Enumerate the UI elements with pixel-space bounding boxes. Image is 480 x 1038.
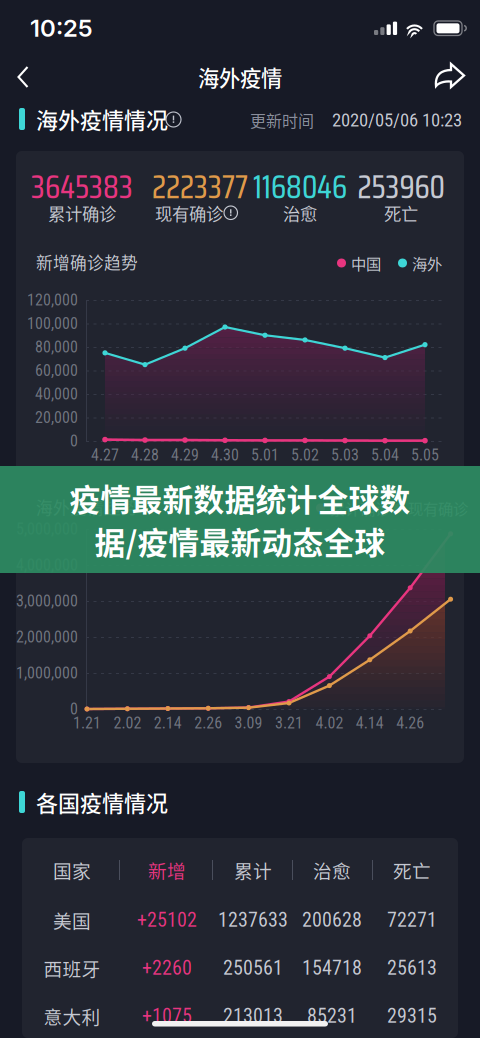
staticText: +2260 (142, 956, 192, 980)
staticText: 85231 (307, 1004, 357, 1028)
staticText: 2020/05/06 10:23 (332, 109, 462, 131)
staticText: 4.14 (356, 714, 384, 732)
staticText: 72271 (387, 908, 437, 932)
staticText: 现有确诊 (408, 497, 468, 519)
staticText: 据/疫情最新动态全球 (94, 519, 385, 563)
staticText: +1075 (142, 1004, 192, 1028)
staticText: 海外 (412, 252, 442, 274)
staticText: 死亡 (393, 856, 431, 883)
staticText: 253960 (357, 162, 444, 212)
staticText: 4.26 (396, 714, 424, 732)
staticText: 0 (70, 432, 78, 450)
staticText: 200628 (302, 908, 362, 932)
staticText: 意大利 (43, 1002, 100, 1029)
staticText: 25613 (387, 956, 437, 980)
staticText: 2.26 (194, 714, 222, 732)
staticText: 29315 (387, 1004, 437, 1028)
button[interactable]: 美国 (22, 896, 458, 944)
staticText: 250561 (223, 956, 283, 980)
button[interactable]: 西班牙 (22, 944, 458, 992)
staticText: 1168046 (253, 162, 347, 212)
button[interactable]: 意大利 (22, 992, 458, 1038)
staticText: 中国 (351, 252, 381, 274)
staticText: 1,000,000 (16, 664, 78, 682)
staticText: 5.03 (331, 446, 359, 464)
staticText: 154718 (302, 956, 362, 980)
staticText: 213013 (223, 1004, 283, 1028)
staticText: 5.02 (291, 446, 319, 464)
staticText: 4.29 (171, 446, 199, 464)
staticText: 国家 (53, 856, 91, 883)
staticText: 4.02 (315, 714, 343, 732)
staticText: 疫情最新数据统计全球数 (69, 476, 410, 520)
staticText: 西班牙 (43, 954, 100, 981)
button[interactable]: 返回 (0, 54, 52, 100)
staticText: 5.05 (411, 446, 439, 464)
staticText: 现有确诊 (155, 200, 223, 226)
staticText: 累计 (234, 856, 272, 883)
staticText: 3,000,000 (16, 592, 78, 610)
staticText: 4.28 (131, 446, 159, 464)
staticText: 60,000 (35, 361, 78, 380)
staticText: 2223377 (152, 162, 248, 212)
staticText: 100,000 (27, 314, 78, 333)
staticText: 3.21 (275, 714, 303, 732)
staticText: 治愈 (283, 200, 317, 226)
staticText: 累计确诊 (330, 497, 390, 519)
staticText: 海外疫情趋势 (36, 495, 138, 519)
staticText: 4.30 (211, 446, 239, 464)
staticText: 20,000 (35, 408, 78, 427)
staticText: 治愈 (313, 856, 351, 883)
staticText: 120,000 (27, 291, 78, 309)
staticText: 0 (70, 700, 78, 718)
staticText: 5.04 (371, 446, 399, 464)
staticText: 10:25 (30, 13, 93, 42)
staticText: 2.02 (113, 714, 141, 732)
staticText: 新增确诊趋势 (36, 250, 138, 274)
staticText: 累计确诊 (48, 200, 116, 226)
staticText: 海外疫情情况 (36, 103, 168, 135)
staticText: 4.27 (91, 446, 119, 464)
staticText: 2,000,000 (16, 628, 78, 646)
staticText: 3645383 (31, 162, 133, 212)
staticText: 5.01 (251, 446, 279, 464)
staticText: 海外疫情 (198, 62, 282, 92)
staticText: +25102 (137, 908, 197, 932)
staticText: 2.14 (154, 714, 182, 732)
staticText: 3.09 (235, 714, 263, 732)
staticText: 美国 (53, 906, 91, 933)
staticText: 1237633 (218, 908, 288, 932)
staticText: 更新时间 (250, 108, 314, 132)
staticText: 新增 (148, 856, 186, 883)
staticText: 40,000 (35, 385, 78, 403)
staticText: 1.21 (73, 714, 101, 732)
staticText: 死亡 (384, 200, 418, 226)
staticText: 80,000 (35, 338, 78, 356)
button[interactable]: 分享 (428, 54, 480, 100)
staticText: 4,000,000 (16, 556, 78, 574)
staticText: 各国疫情情况 (36, 786, 168, 818)
